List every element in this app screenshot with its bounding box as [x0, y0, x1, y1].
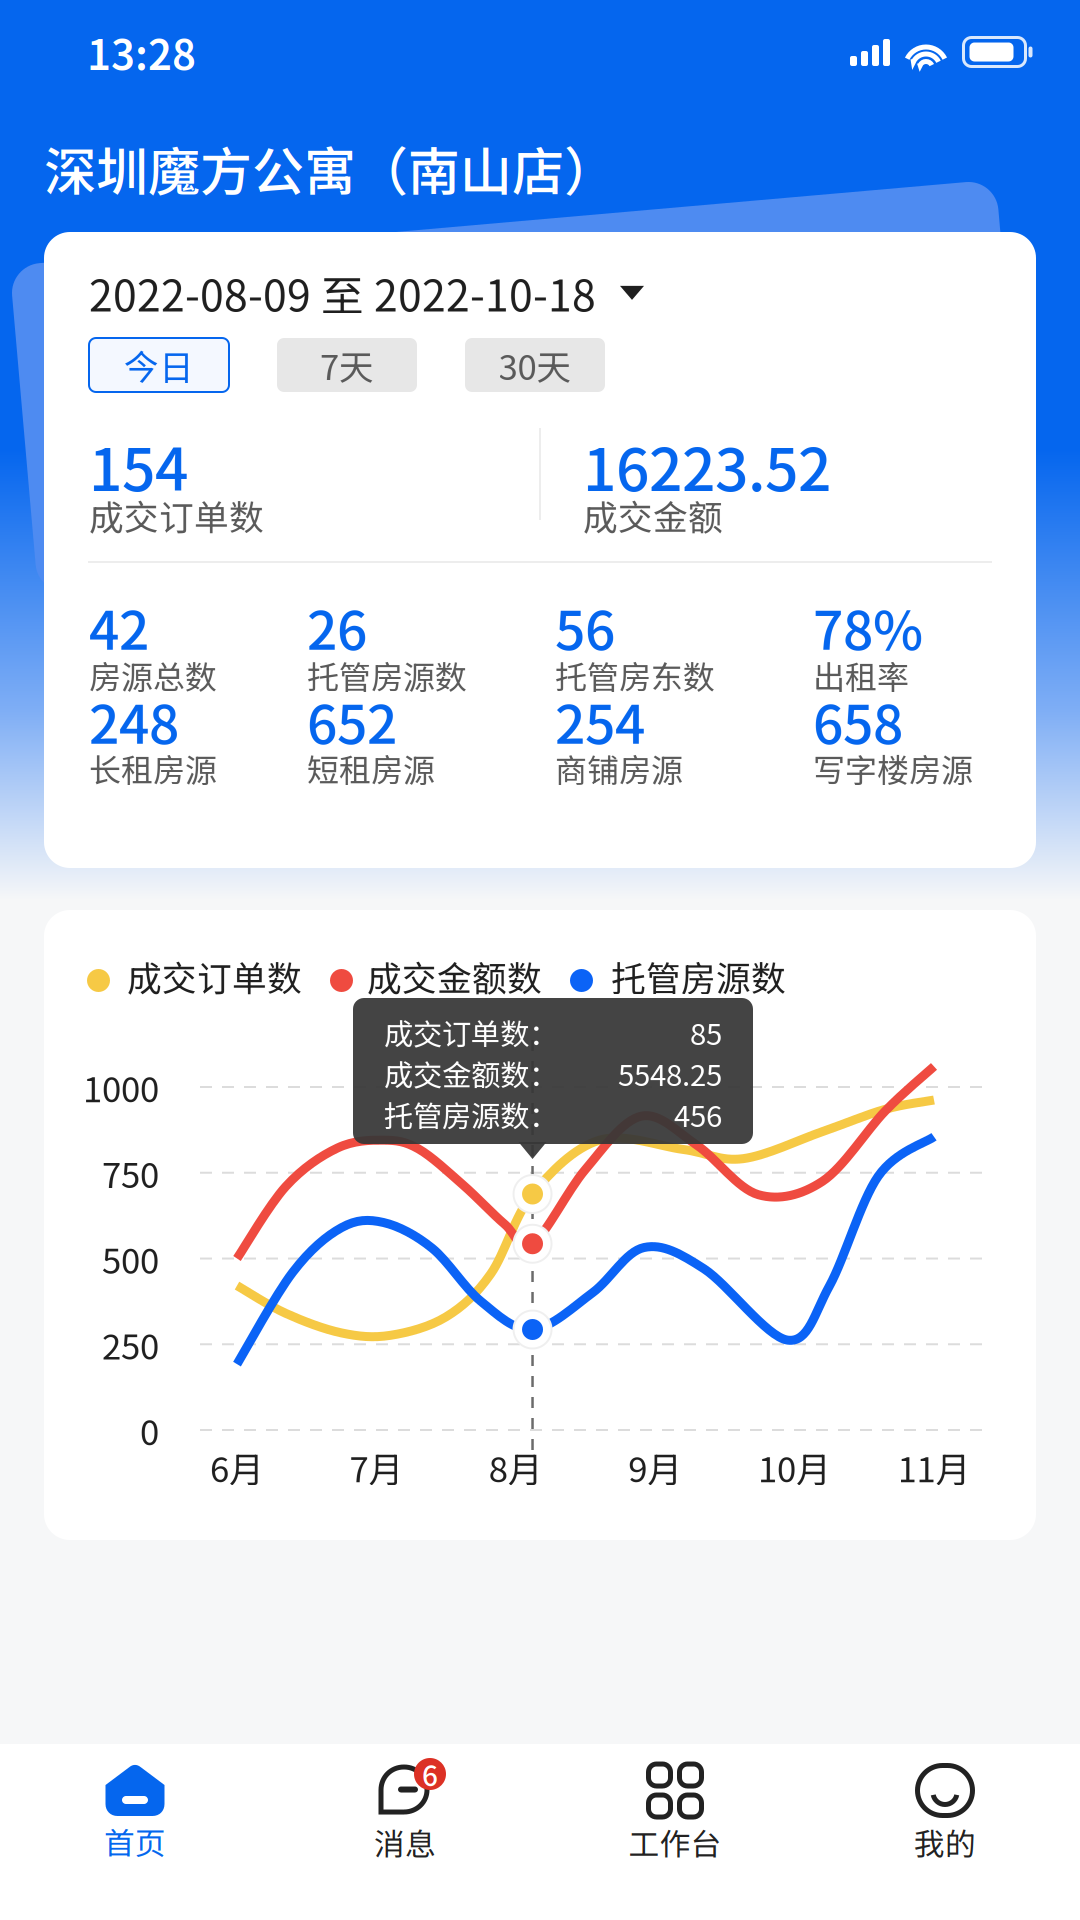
button[interactable]: 首页 [0, 1744, 270, 1920]
staticText: 工作台 [628, 1820, 721, 1864]
staticText: 6月 [210, 1442, 264, 1492]
staticText: 消息 [374, 1820, 436, 1864]
button[interactable]: 6 [270, 1744, 540, 1920]
staticText: 托管房东数 [555, 652, 715, 698]
staticText: 长租房源 [89, 745, 217, 791]
staticText: 78% [813, 588, 923, 665]
staticText: 652 [307, 682, 397, 759]
button[interactable]: 30天 [465, 338, 605, 392]
button[interactable]: 我的 [810, 1744, 1080, 1920]
staticText: 成交订单数： [384, 1011, 558, 1053]
staticText: 成交订单数 [127, 951, 302, 1001]
staticText: 7月 [349, 1442, 403, 1492]
staticText: 13:28 [87, 22, 196, 82]
staticText: 托管房源数 [611, 951, 786, 1001]
staticText: 成交订单数 [89, 490, 264, 540]
staticText: 我的 [914, 1820, 976, 1864]
staticText: 10月 [758, 1442, 831, 1492]
button[interactable]: 工作台 [540, 1744, 810, 1920]
staticText: 250 [102, 1319, 159, 1369]
staticText: 短租房源 [307, 745, 435, 791]
staticText: 深圳魔方公寓（南山店） [44, 130, 616, 206]
staticText: 成交金额数： [384, 1052, 558, 1094]
button[interactable]: 2022-08-09 至 2022-10-18 [43, 246, 690, 340]
staticText: 254 [555, 682, 645, 759]
staticText: 8月 [489, 1442, 543, 1492]
staticText: 今日 [124, 340, 194, 390]
staticText: 5548.25 [618, 1052, 722, 1094]
staticText: 首页 [104, 1819, 166, 1863]
staticText: 500 [102, 1233, 159, 1284]
staticText: 1000 [83, 1062, 159, 1112]
staticText: 托管房源数： [384, 1093, 558, 1135]
staticText: 商铺房源 [555, 745, 683, 791]
staticText: 30天 [498, 340, 571, 390]
staticText: 85 [690, 1011, 722, 1053]
button[interactable]: 7天 [277, 338, 417, 392]
staticText: 26 [307, 588, 367, 665]
staticText: 56 [555, 588, 615, 665]
staticText: 托管房源数 [307, 652, 467, 698]
staticText: 11月 [897, 1442, 970, 1492]
staticText: 成交金额 [583, 490, 723, 540]
staticText: 2022-08-09 至 2022-10-18 [89, 262, 596, 324]
staticText: 750 [102, 1148, 159, 1198]
staticText: 248 [89, 682, 179, 759]
staticText: 658 [813, 682, 903, 759]
staticText: 出租率 [813, 652, 909, 698]
staticText: 154 [89, 423, 188, 508]
staticText: 6 [422, 1754, 438, 1794]
staticText: 42 [89, 588, 149, 665]
staticText: 456 [674, 1093, 722, 1135]
staticText: 房源总数 [89, 652, 217, 698]
staticText: 0 [140, 1405, 159, 1455]
button[interactable]: 今日 [89, 338, 229, 392]
staticText: 写字楼房源 [813, 745, 973, 791]
staticText: 7天 [320, 340, 374, 390]
staticText: 9月 [628, 1442, 682, 1492]
staticText: 16223.52 [583, 423, 831, 508]
staticText: 成交金额数 [367, 951, 542, 1001]
